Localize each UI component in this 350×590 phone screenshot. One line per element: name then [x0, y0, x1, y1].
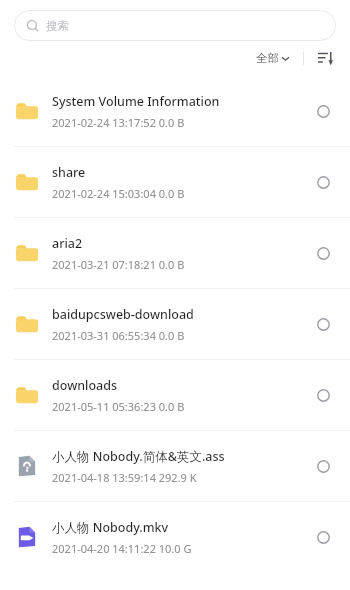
- staticText: aria2: [52, 235, 83, 252]
- staticText: 2021-02-24 15:03:04 0.0 B: [52, 186, 185, 201]
- button[interactable]: Select System Volume Information: [310, 98, 336, 124]
- staticText: downloads: [52, 377, 118, 394]
- button[interactable]: Select 小人物 Nobody.mkv: [310, 524, 336, 550]
- staticText: 2021-04-18 13:59:14 292.9 K: [52, 470, 197, 485]
- button[interactable]: downloads: [0, 360, 350, 430]
- staticText: 2021-04-20 14:11:22 10.0 G: [52, 541, 192, 556]
- staticText: share: [52, 164, 86, 181]
- button[interactable]: Select baidupcsweb-download: [310, 311, 336, 337]
- button[interactable]: 搜索: [14, 10, 336, 41]
- staticText: 2021-05-11 05:36:23 0.0 B: [52, 399, 185, 414]
- button[interactable]: Select aria2: [310, 240, 336, 266]
- staticText: 搜索: [46, 19, 69, 33]
- staticText: 2021-02-24 13:17:52 0.0 B: [52, 115, 185, 130]
- button[interactable]: baidupcsweb-download: [0, 289, 350, 359]
- staticText: baidupcsweb-download: [52, 306, 194, 323]
- button[interactable]: Select share: [310, 169, 336, 195]
- button[interactable]: System Volume Information: [0, 76, 350, 146]
- button[interactable]: Sort: [314, 47, 336, 69]
- staticText: System Volume Information: [52, 93, 220, 110]
- button[interactable]: 小人物 Nobody.mkv: [0, 502, 350, 572]
- staticText: 2021-03-21 07:18:21 0.0 B: [52, 257, 185, 272]
- staticText: 小人物 Nobody.mkv: [52, 519, 169, 536]
- button[interactable]: aria2: [0, 218, 350, 288]
- button[interactable]: 小人物 Nobody.简体&英文.ass: [0, 431, 350, 501]
- button[interactable]: Select downloads: [310, 382, 336, 408]
- button[interactable]: 全部: [252, 48, 293, 68]
- staticText: 小人物 Nobody.简体&英文.ass: [52, 448, 225, 465]
- button[interactable]: Select 小人物 Nobody.简体&英文.ass: [310, 453, 336, 479]
- staticText: 2021-03-31 06:55:34 0.0 B: [52, 328, 185, 343]
- button[interactable]: share: [0, 147, 350, 217]
- staticText: 全部: [256, 51, 279, 65]
